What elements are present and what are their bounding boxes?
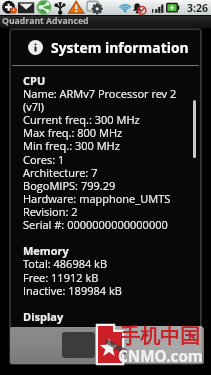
staticText: Total: 486984 kB <box>23 256 108 271</box>
staticText: System information <box>51 38 189 57</box>
staticText: Quadrant Advanced <box>2 15 89 27</box>
staticText: Inactive: 189984 kB <box>23 283 122 298</box>
staticText: Serial #: 0000000000000000 <box>23 217 168 232</box>
staticText: Revision: 2 <box>23 204 78 219</box>
staticText: Free: 11912 kB <box>23 270 99 285</box>
staticText: Memory <box>23 243 69 258</box>
staticText: (v7l) <box>23 99 45 114</box>
staticText: Cores: 1 <box>23 152 65 167</box>
staticText: BogoMIPS: 799.29 <box>23 178 116 193</box>
staticText: Display <box>23 309 64 324</box>
staticText: CPU <box>23 73 46 88</box>
button[interactable] <box>10 327 204 364</box>
staticText: Current freq.: 300 MHz <box>23 112 140 127</box>
staticText: 3:26 <box>187 1 208 15</box>
staticText: 手机中国 <box>120 324 200 349</box>
button[interactable]: Quadrant Advanced <box>0 16 211 28</box>
other: Information <box>28 40 43 55</box>
staticText: Hardware: mapphone_UMTS <box>23 191 171 206</box>
staticText: Min freq.: 300 MHz <box>23 138 120 153</box>
staticText: CNMO.com <box>118 346 203 367</box>
staticText: Architecture: 7 <box>23 165 98 180</box>
staticText: Max freq.: 800 MHz <box>23 125 123 140</box>
staticText: Name: ARMv7 Processor rev 2 <box>23 86 177 101</box>
